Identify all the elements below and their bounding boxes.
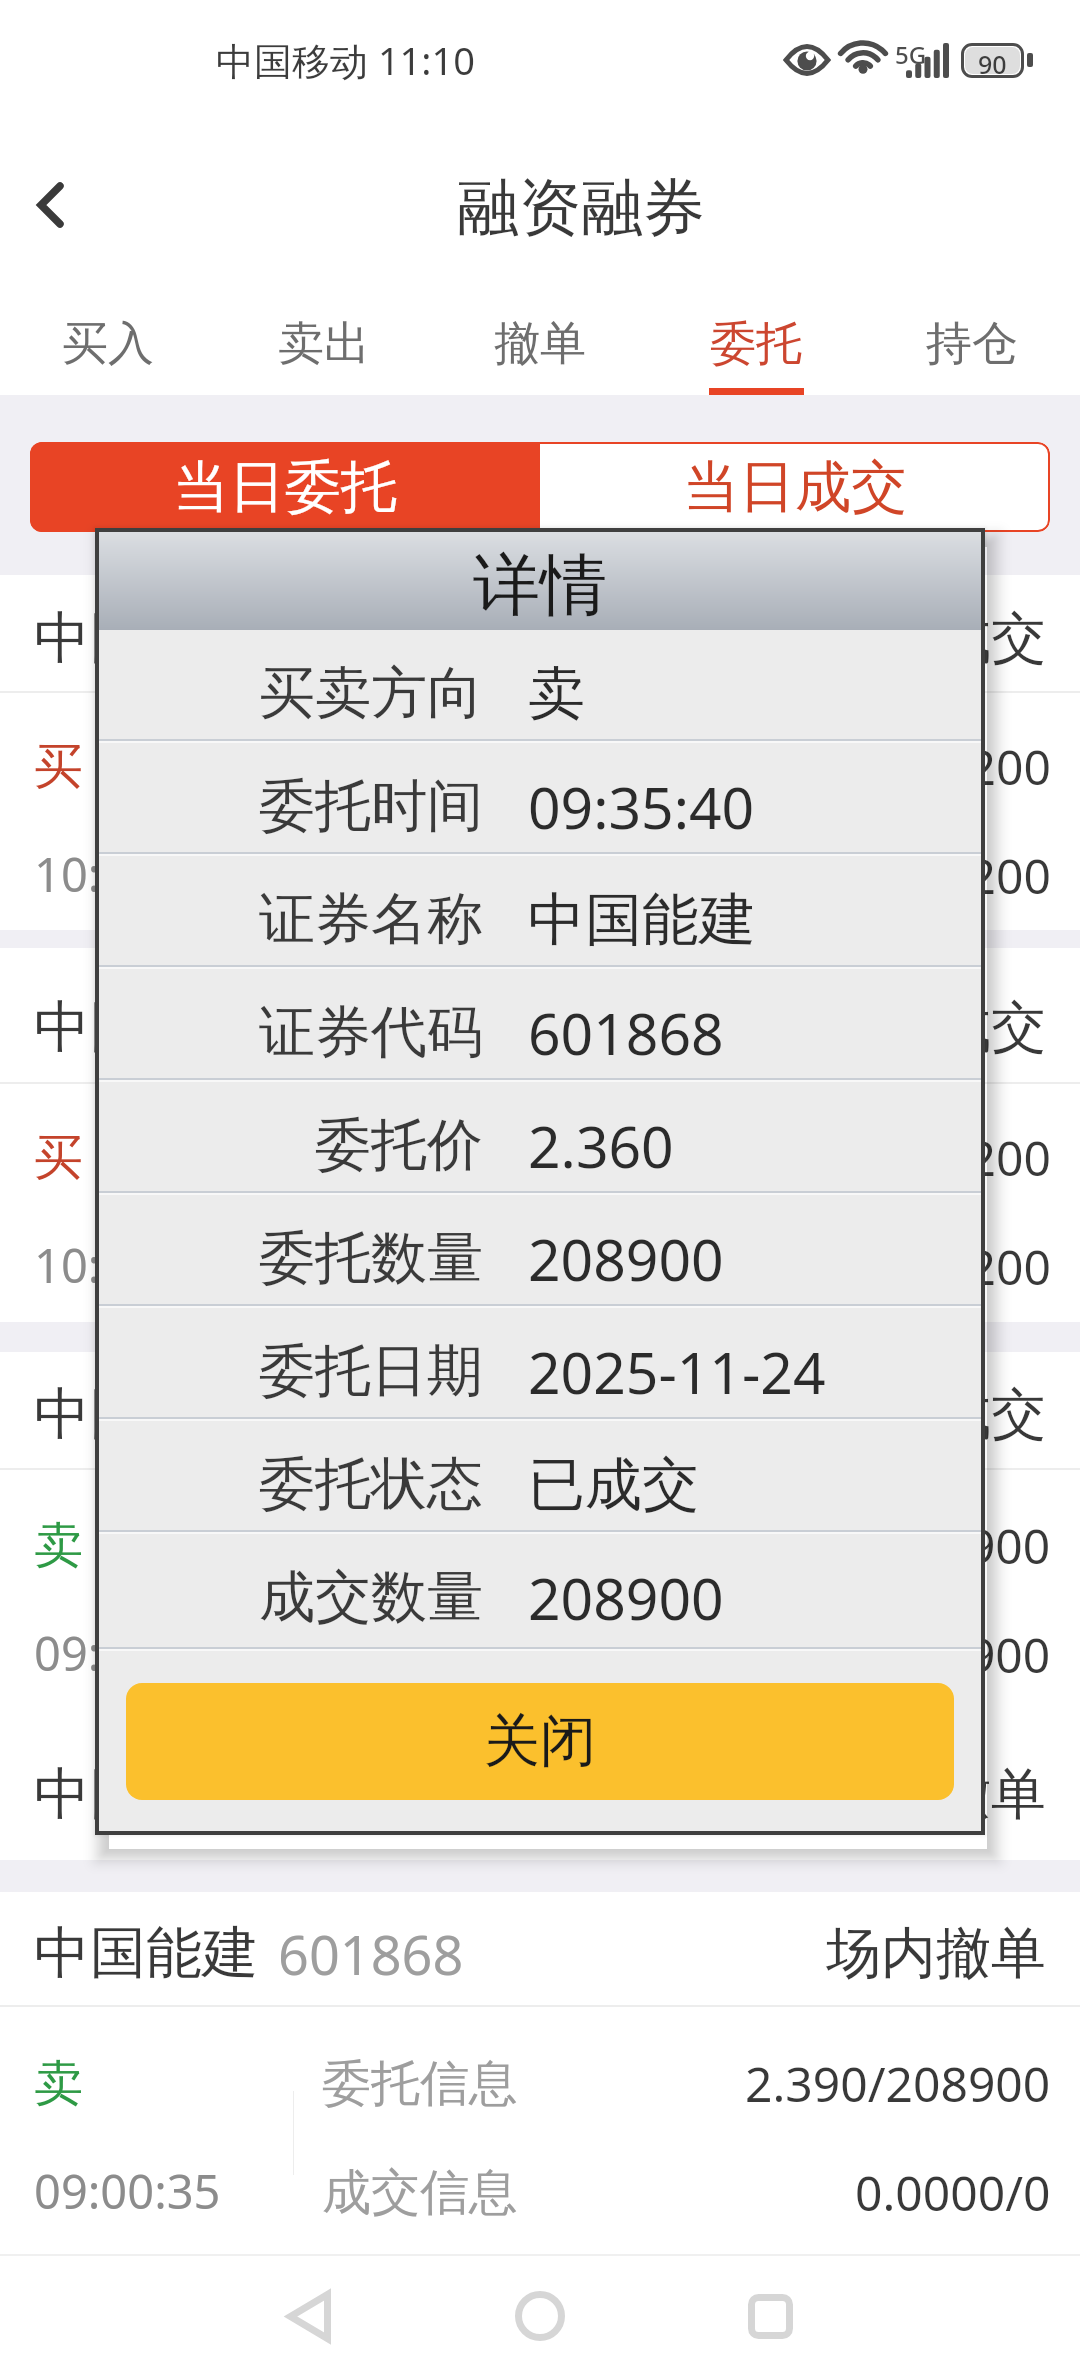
staticText: 买 (34, 1127, 83, 1189)
staticText: 场内撤单 (826, 1760, 1046, 1829)
button[interactable]: 中国能建 (0, 575, 1080, 930)
button[interactable]: Back (0, 155, 100, 255)
staticText: 委托时间 (259, 771, 483, 842)
staticText: 成交信息 (322, 2162, 518, 2224)
staticText: 中国能建 (34, 603, 258, 674)
staticText: 买入 (62, 315, 154, 373)
button[interactable]: 中国能建 (0, 948, 1080, 1322)
staticText: 当日委托 (173, 452, 397, 523)
staticText: 已成交 (528, 1449, 699, 1521)
staticText: 09:00:35 (34, 2159, 221, 2223)
button[interactable]: 买入 (0, 285, 216, 395)
staticText: 已成交 (881, 993, 1046, 1062)
staticText: 成交信息 (322, 1236, 518, 1298)
staticText: 证券代码 (259, 997, 483, 1068)
staticText: 成交信息 (322, 845, 518, 907)
staticText: 208900 (528, 1559, 724, 1637)
button[interactable]: 委托 (648, 285, 864, 395)
staticText: 成交数量 (259, 1562, 483, 1633)
staticText: 90 (978, 47, 1007, 74)
staticText: 中国能建 (528, 884, 756, 956)
staticText: 详情 (473, 543, 607, 627)
staticText: 2.360/208900 (745, 1622, 1051, 1687)
staticText: 2.360/208900 (745, 1513, 1051, 1578)
staticText: 601868 (278, 990, 464, 1064)
staticText: 委托信息 (322, 1127, 518, 1189)
button[interactable]: Back (249, 2256, 369, 2376)
staticText: 2.360 (528, 1107, 674, 1185)
staticText: 撤单 (494, 315, 586, 373)
staticText: 证券名称 (259, 884, 483, 955)
staticText: 委托状态 (259, 1449, 483, 1520)
staticText: 2.340/200 (828, 734, 1051, 799)
staticText: 卖出 (278, 315, 370, 373)
staticText: 买卖方向 (259, 658, 483, 729)
staticText: 0.0000/0 (855, 2160, 1051, 2225)
staticText: 09:35:40 (34, 1621, 221, 1685)
staticText: 场内撤单 (826, 1919, 1046, 1988)
staticText: 卖 (34, 2053, 83, 2115)
staticText: 中国能建 (34, 1918, 258, 1989)
staticText: 关闭 (484, 1706, 596, 1777)
staticText: 融资融券 (457, 169, 705, 247)
button[interactable]: Recent apps (710, 2256, 830, 2376)
staticText: 中国能建 (34, 992, 258, 1063)
staticText: 委托价 (315, 1110, 483, 1181)
staticText: 601868 (278, 601, 464, 675)
staticText: 208900 (528, 1220, 724, 1298)
staticText: 持仓 (926, 315, 1018, 373)
button[interactable]: 关闭 (126, 1683, 954, 1800)
staticText: 601868 (278, 1757, 464, 1831)
staticText: 委托 (710, 315, 802, 373)
staticText: 10:05:41 (34, 1233, 221, 1297)
staticText: 中国能建 (34, 1379, 258, 1450)
button[interactable]: 撤单 (432, 285, 648, 395)
button[interactable]: 卖出 (216, 285, 432, 395)
staticText: 委托信息 (322, 1515, 518, 1577)
staticText: 2.340/200 (828, 843, 1051, 908)
staticText: 09:35:40 (528, 768, 755, 846)
staticText: 买 (34, 736, 83, 798)
button[interactable]: 中国能建 (0, 1712, 1080, 1860)
staticText: 卖 (528, 658, 585, 730)
button[interactable]: 持仓 (864, 285, 1080, 395)
button[interactable]: 当日成交 (540, 442, 1050, 532)
staticText: 601868 (278, 1377, 464, 1451)
button[interactable]: 当日委托 (30, 442, 540, 532)
staticText: 委托信息 (322, 736, 518, 798)
staticText: 601868 (278, 1917, 464, 1991)
staticText: 601868 (528, 994, 724, 1072)
staticText: 10:12:05 (34, 842, 221, 906)
staticText: 已成交 (881, 604, 1046, 673)
staticText: 成交信息 (322, 1624, 518, 1686)
staticText: 中国能建 (34, 1759, 258, 1830)
staticText: 5G (895, 38, 927, 71)
button[interactable]: 中国能建 (0, 1892, 1080, 2250)
staticText: 2.350/200 (828, 1125, 1051, 1190)
staticText: 委托数量 (259, 1223, 483, 1294)
button[interactable]: Home (480, 2256, 600, 2376)
staticText: 当日成交 (683, 452, 907, 523)
button[interactable]: 中国能建 (0, 1352, 1080, 1712)
staticText: 中国移动 11:10 (216, 34, 476, 86)
staticText: 2025-11-24 (528, 1333, 826, 1411)
staticText: 2.390/208900 (745, 2051, 1051, 2116)
staticText: 已成交 (881, 1380, 1046, 1449)
staticText: 委托日期 (259, 1336, 483, 1407)
staticText: 卖 (34, 1515, 83, 1577)
staticText: 委托信息 (322, 2053, 518, 2115)
staticText: 2.350/200 (828, 1234, 1051, 1299)
